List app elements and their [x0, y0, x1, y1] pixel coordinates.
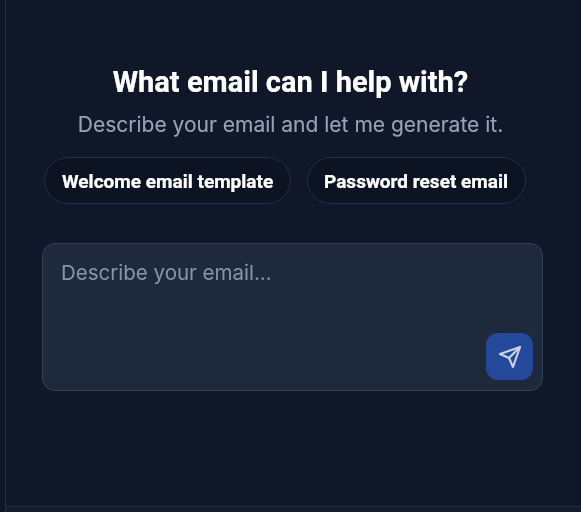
button[interactable]: Welcome email template	[44, 157, 291, 204]
button[interactable]: Password reset email	[307, 157, 526, 204]
staticText: Describe your email...	[61, 260, 272, 285]
button[interactable]	[486, 333, 533, 380]
staticText: Password reset email	[324, 170, 509, 192]
button[interactable]: Describe your email...	[42, 243, 543, 391]
staticText: Welcome email template	[62, 170, 274, 192]
staticText: Describe your email and let me generate …	[0, 112, 581, 137]
staticText: What email can I help with?	[0, 65, 581, 99]
